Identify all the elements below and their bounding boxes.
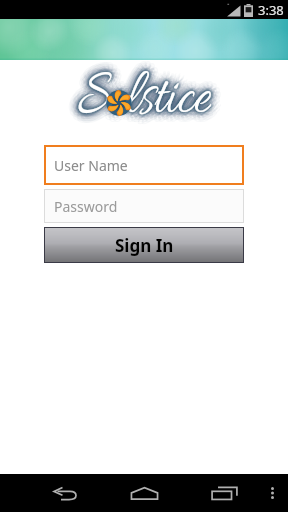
- staticText: Password: [54, 197, 118, 216]
- staticText: Solstice: [76, 68, 209, 142]
- button[interactable]: Recents: [206, 481, 243, 505]
- staticText: Solstice: [81, 54, 214, 128]
- staticText: Solstice: [77, 52, 210, 126]
- staticText: Solstice: [79, 64, 212, 138]
- staticText: Solstice: [84, 55, 217, 129]
- staticText: Solstice: [79, 61, 212, 135]
- staticText: Solstice: [84, 61, 217, 135]
- staticText: Solstice: [73, 52, 206, 126]
- staticText: Solstice: [75, 54, 208, 128]
- staticText: Solstice: [69, 54, 202, 128]
- staticText: Solstice: [70, 58, 203, 132]
- staticText: Solstice: [85, 61, 218, 135]
- staticText: Solstice: [71, 55, 204, 129]
- staticText: Solstice: [80, 55, 213, 129]
- staticText: Solstice: [79, 55, 212, 129]
- staticText: Solstice: [75, 62, 208, 136]
- staticText: Solstice: [87, 62, 220, 136]
- staticText: Solstice: [82, 63, 215, 137]
- staticText: User Name: [54, 156, 128, 175]
- staticText: Solstice: [72, 66, 205, 140]
- staticText: Solstice: [80, 68, 213, 142]
- staticText: 3:38: [258, 1, 284, 19]
- staticText: Solstice: [81, 58, 214, 132]
- button[interactable]: Back: [45, 481, 82, 505]
- staticText: Sign In: [115, 234, 174, 257]
- staticText: Solstice: [78, 56, 211, 130]
- staticText: Solstice: [80, 66, 213, 140]
- staticText: Solstice: [82, 53, 215, 127]
- staticText: Solstice: [76, 59, 209, 133]
- staticText: Solstice: [80, 50, 213, 124]
- staticText: Solstice: [72, 55, 205, 129]
- staticText: Solstice: [85, 55, 218, 129]
- staticText: Solstice: [74, 63, 207, 137]
- staticText: Solstice: [83, 64, 216, 138]
- staticText: Solstice: [86, 58, 219, 132]
- staticText: Solstice: [82, 60, 215, 134]
- staticText: Solstice: [77, 61, 210, 135]
- button[interactable]: Sign In: [44, 227, 244, 263]
- staticText: Solstice: [76, 48, 209, 122]
- staticText: Solstice: [82, 56, 215, 130]
- staticText: Solstice: [79, 59, 212, 133]
- staticText: Solstice: [81, 57, 214, 131]
- staticText: Solstice: [79, 57, 212, 131]
- button[interactable]: More options: [262, 481, 282, 505]
- staticText: Solstice: [71, 61, 204, 135]
- staticText: Solstice: [73, 58, 206, 132]
- staticText: Solstice: [74, 60, 207, 134]
- staticText: Solstice: [84, 58, 217, 132]
- staticText: Solstice: [88, 58, 221, 132]
- staticText: Solstice: [84, 66, 217, 140]
- staticText: Solstice: [77, 64, 210, 138]
- staticText: Solstice: [79, 62, 212, 136]
- staticText: Solstice: [80, 57, 213, 131]
- button[interactable]: User Name: [44, 145, 244, 185]
- staticText: Solstice: [72, 50, 205, 124]
- staticText: Solstice: [74, 53, 207, 127]
- staticText: Solstice: [75, 57, 208, 131]
- staticText: Solstice: [84, 50, 217, 124]
- staticText: Solstice: [76, 66, 209, 140]
- staticText: Solstice: [68, 58, 201, 132]
- staticText: Solstice: [75, 59, 208, 133]
- staticText: Solstice: [77, 59, 210, 133]
- staticText: Solstice: [83, 58, 216, 132]
- staticText: Solstice: [78, 58, 211, 132]
- staticText: Solstice: [81, 62, 214, 136]
- staticText: Solstice: [77, 57, 210, 131]
- staticText: Solstice: [87, 54, 220, 128]
- staticText: Solstice: [76, 50, 209, 124]
- staticText: Solstice: [78, 56, 211, 130]
- staticText: Solstice: [80, 59, 213, 133]
- staticText: Solstice: [76, 58, 209, 132]
- staticText: Solstice: [72, 61, 205, 135]
- staticText: Solstice: [80, 61, 213, 135]
- staticText: Solstice: [79, 54, 212, 128]
- staticText: Solstice: [76, 57, 209, 131]
- staticText: Solstice: [76, 55, 209, 129]
- staticText: Solstice: [74, 56, 207, 130]
- staticText: Solstice: [80, 58, 213, 132]
- staticText: Solstice: [77, 62, 210, 136]
- staticText: Solstice: [75, 58, 208, 132]
- button[interactable]: Password: [44, 189, 244, 223]
- staticText: Solstice: [77, 54, 210, 128]
- staticText: Solstice: [73, 64, 206, 138]
- staticText: Solstice: [79, 52, 212, 126]
- staticText: Solstice: [78, 60, 211, 134]
- staticText: Solstice: [83, 52, 216, 126]
- staticText: Solstice: [72, 58, 205, 132]
- button[interactable]: Home: [126, 481, 163, 505]
- staticText: Solstice: [76, 61, 209, 135]
- staticText: Solstice: [77, 55, 210, 129]
- staticText: Solstice: [69, 62, 202, 136]
- staticText: Solstice: [78, 60, 211, 134]
- staticText: Solstice: [81, 59, 214, 133]
- staticText: Solstice: [80, 48, 213, 122]
